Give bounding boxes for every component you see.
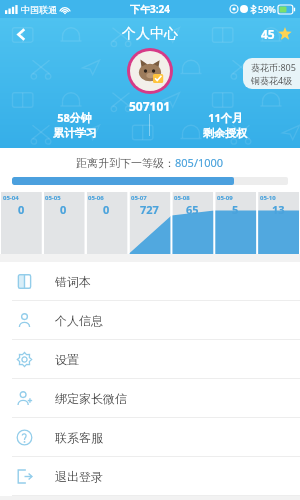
staticText: 距离升到下一等级：	[76, 156, 175, 170]
staticText: 59%	[258, 3, 276, 15]
staticText: 0	[18, 202, 25, 217]
staticText: 剩余授权	[203, 126, 247, 140]
button[interactable]: Back	[6, 19, 36, 49]
staticText: 葵花币:805	[251, 61, 296, 73]
staticText: 绑定家长微信	[55, 391, 127, 406]
staticText: 错词本	[55, 274, 91, 289]
staticText: 个人信息	[55, 313, 103, 328]
staticText: 0	[103, 202, 110, 217]
button[interactable]: 葵花币:805	[251, 61, 296, 86]
button[interactable]: 绑定家长微信	[0, 379, 300, 417]
button[interactable]: 联系客服	[0, 418, 300, 456]
staticText: 5	[232, 202, 239, 217]
staticText: 铜葵花4级	[251, 74, 293, 86]
staticText: 05-06	[88, 194, 104, 202]
staticText: 累计学习	[53, 126, 97, 140]
staticText: 58分钟	[57, 110, 92, 125]
button[interactable]: 设置	[0, 340, 300, 378]
staticText: 05-07	[131, 194, 147, 202]
staticText: 727	[140, 202, 159, 217]
staticText: 05-04	[3, 194, 19, 202]
staticText: 中国联通	[21, 4, 57, 15]
staticText: 65	[186, 202, 199, 217]
button[interactable]	[130, 51, 170, 91]
staticText: 45	[261, 26, 275, 42]
button[interactable]: 45	[261, 26, 292, 42]
button[interactable]: 错词本	[0, 262, 300, 300]
staticText: 11个月	[208, 110, 243, 125]
staticText: 05-09	[217, 194, 233, 202]
staticText: 个人中心	[122, 25, 178, 43]
staticText: 下午3:24	[130, 2, 170, 16]
staticText: 退出登录	[55, 469, 103, 484]
staticText: 805/1000	[175, 155, 224, 170]
staticText: 05-05	[45, 194, 61, 202]
staticText: 05-10	[260, 194, 276, 202]
staticText: 05-08	[174, 194, 190, 202]
staticText: 联系客服	[55, 430, 103, 445]
staticText: 507101	[129, 98, 171, 114]
staticText: 设置	[55, 352, 79, 367]
button[interactable]: 个人信息	[0, 301, 300, 339]
button[interactable]: 退出登录	[0, 457, 300, 495]
staticText: 0	[60, 202, 67, 217]
staticText: 13	[272, 202, 285, 217]
